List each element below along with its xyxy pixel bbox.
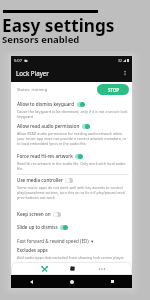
- staticText: Excludes apps: [17, 247, 48, 253]
- button[interactable]: STOP: [97, 84, 129, 95]
- staticText: Allow READ audio permission for reading …: [17, 131, 129, 146]
- staticText: Easy settings: [2, 14, 115, 37]
- staticText: Add audio apps that excluded from showin…: [17, 255, 124, 260]
- staticText: Use media controller: [17, 177, 63, 183]
- button[interactable]: Theme: [58, 262, 87, 275]
- staticText: Allow to dismiss keyguard: [17, 101, 75, 107]
- staticText: Status: running: [17, 87, 48, 93]
- staticText: Keep screen on: [17, 211, 51, 217]
- staticText: Read Hi-res artwork in the audio file. O…: [17, 161, 129, 171]
- button[interactable]: [65, 178, 73, 183]
- staticText: Force read Hi-res artwork: [17, 153, 73, 159]
- button[interactable]: Recents: [92, 275, 132, 288]
- staticText: 32: [118, 58, 122, 63]
- button[interactable]: More: [87, 262, 116, 275]
- button[interactable]: Home: [52, 275, 92, 288]
- staticText: Allow read audio permission: [17, 123, 80, 129]
- button[interactable]: [53, 212, 61, 217]
- staticText: Lock Player: [16, 69, 49, 77]
- staticText: Fast forward & rewind speed (ED) ▾: [17, 238, 94, 244]
- staticText: Sensors enabled: [2, 33, 80, 46]
- button[interactable]: Back: [11, 275, 52, 288]
- staticText: STOP: [108, 87, 119, 93]
- button[interactable]: [82, 124, 90, 129]
- button[interactable]: [75, 154, 83, 159]
- staticText: 5:07: [14, 58, 22, 63]
- staticText: Some music apps do not work well with ke…: [17, 185, 129, 200]
- button[interactable]: [77, 102, 85, 107]
- staticText: Slide up to dismiss: [17, 224, 58, 230]
- staticText: Cause the keyguard to be dismissed, only…: [17, 109, 129, 119]
- button[interactable]: More options: [120, 68, 130, 78]
- button[interactable]: [60, 225, 68, 230]
- button[interactable]: Tools: [30, 262, 58, 275]
